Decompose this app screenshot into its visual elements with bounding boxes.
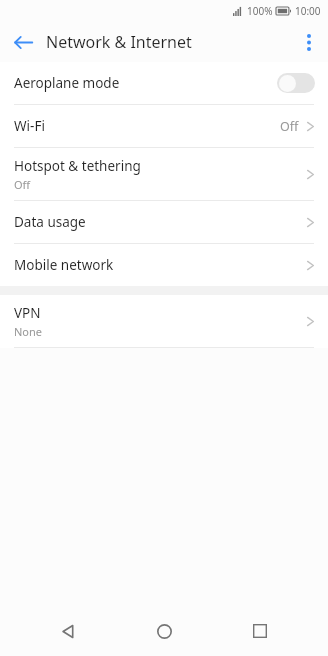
- button[interactable]: Back: [40, 608, 96, 654]
- staticText: Data usage: [14, 213, 86, 231]
- button[interactable]: Data usage: [0, 201, 328, 243]
- staticText: VPN: [14, 304, 41, 322]
- staticText: Hotspot & tethering: [14, 157, 141, 175]
- staticText: Aeroplane mode: [14, 74, 120, 92]
- button[interactable]: Mobile network: [0, 244, 328, 286]
- staticText: Mobile network: [14, 256, 114, 274]
- button[interactable]: Home: [136, 608, 192, 654]
- staticText: Wi-Fi: [14, 117, 45, 135]
- staticText: None: [14, 324, 43, 339]
- button[interactable]: Aeroplane mode: [0, 62, 328, 104]
- staticText: Off: [280, 118, 299, 135]
- button[interactable]: Wi-Fi: [0, 105, 328, 147]
- button[interactable]: Hotspot & tethering: [0, 148, 328, 200]
- staticText: Off: [14, 177, 31, 192]
- button[interactable]: More options: [290, 22, 328, 62]
- button[interactable]: VPN: [0, 295, 328, 347]
- staticText: 10:00: [295, 4, 321, 18]
- staticText: 100%: [247, 4, 273, 18]
- button[interactable]: Aeroplane mode toggle: [277, 73, 315, 93]
- staticText: Network & Internet: [46, 31, 192, 53]
- button[interactable]: Back: [0, 22, 46, 62]
- button[interactable]: Recent apps: [232, 608, 288, 654]
